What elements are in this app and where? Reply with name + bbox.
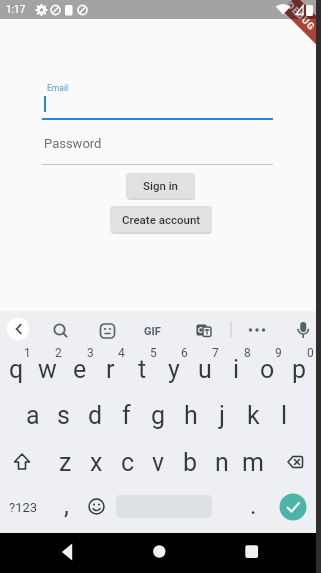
staticText: f: [122, 401, 131, 430]
button[interactable]: e: [64, 351, 95, 387]
button[interactable]: o: [252, 351, 283, 387]
button[interactable]: [47, 318, 72, 343]
button[interactable]: k: [238, 397, 269, 433]
button[interactable]: t: [127, 351, 158, 387]
button[interactable]: [279, 493, 307, 521]
button[interactable]: m: [237, 444, 268, 480]
button[interactable]: Create account: [110, 206, 212, 232]
button[interactable]: c: [112, 444, 143, 480]
staticText: 1:17: [6, 4, 26, 16]
button[interactable]: r: [95, 351, 126, 387]
button[interactable]: i: [221, 351, 252, 387]
staticText: 2: [55, 346, 62, 360]
staticText: DEBUG: [285, 0, 318, 33]
button[interactable]: q: [1, 351, 32, 387]
staticText: 7: [212, 346, 219, 360]
staticText: o: [260, 355, 275, 384]
button[interactable]: [8, 448, 36, 476]
staticText: ,: [64, 491, 69, 520]
button[interactable]: [141, 537, 177, 569]
button[interactable]: l: [269, 397, 300, 433]
staticText: ?123: [9, 500, 38, 515]
staticText: m: [242, 448, 264, 477]
button[interactable]: h: [175, 397, 206, 433]
staticText: i: [233, 355, 240, 384]
button[interactable]: [95, 318, 120, 343]
staticText: 5: [150, 346, 157, 360]
button[interactable]: ,: [56, 490, 76, 520]
staticText: .: [250, 491, 257, 520]
staticText: x: [90, 448, 103, 477]
staticText: k: [247, 401, 260, 430]
staticText: u: [198, 355, 212, 384]
staticText: 1: [24, 346, 31, 360]
staticText: h: [184, 401, 198, 430]
staticText: 8: [244, 346, 251, 360]
staticText: 0: [307, 346, 314, 360]
staticText: v: [152, 448, 165, 477]
button[interactable]: [83, 493, 110, 520]
staticText: j: [219, 401, 225, 430]
button[interactable]: a: [17, 397, 48, 433]
button[interactable]: [244, 318, 269, 343]
button[interactable]: j: [206, 397, 237, 433]
staticText: 9: [275, 346, 282, 360]
staticText: c: [121, 448, 135, 477]
button[interactable]: [290, 318, 316, 343]
staticText: t: [138, 355, 147, 384]
button[interactable]: [6, 317, 30, 341]
button[interactable]: b: [175, 444, 206, 480]
button[interactable]: x: [81, 444, 112, 480]
button[interactable]: g: [143, 397, 174, 433]
staticText: q: [9, 355, 24, 384]
button[interactable]: n: [206, 444, 237, 480]
button[interactable]: [234, 537, 270, 569]
button[interactable]: ?123: [2, 494, 44, 520]
staticText: Password: [44, 136, 102, 151]
staticText: b: [183, 448, 198, 477]
staticText: w: [38, 355, 57, 384]
staticText: l: [281, 401, 288, 430]
staticText: z: [59, 448, 72, 477]
staticText: e: [73, 355, 87, 384]
button[interactable]: Sign in: [126, 173, 195, 198]
button[interactable]: s: [48, 397, 79, 433]
staticText: Create account: [122, 213, 201, 226]
button[interactable]: d: [80, 397, 111, 433]
staticText: g: [151, 401, 166, 430]
button[interactable]: [191, 318, 216, 343]
staticText: p: [292, 355, 307, 384]
button[interactable]: [279, 448, 307, 476]
staticText: 3: [87, 346, 94, 360]
staticText: r: [106, 355, 115, 384]
staticText: 6: [181, 346, 188, 360]
button[interactable]: z: [50, 444, 81, 480]
staticText: Sign in: [143, 179, 179, 192]
staticText: y: [168, 355, 180, 384]
button[interactable]: y: [158, 351, 189, 387]
button[interactable]: .: [243, 490, 263, 520]
staticText: a: [26, 401, 40, 430]
button[interactable]: v: [143, 444, 174, 480]
button[interactable]: GIF: [135, 322, 169, 340]
staticText: Email: [47, 83, 69, 93]
button[interactable]: f: [111, 397, 142, 433]
button[interactable]: u: [189, 351, 220, 387]
button[interactable]: [48, 537, 84, 569]
button[interactable]: w: [32, 351, 63, 387]
staticText: n: [215, 448, 229, 477]
staticText: 4: [118, 346, 125, 360]
staticText: d: [88, 401, 103, 430]
button[interactable]: p: [284, 351, 315, 387]
staticText: GIF: [144, 325, 161, 338]
staticText: s: [57, 401, 70, 430]
